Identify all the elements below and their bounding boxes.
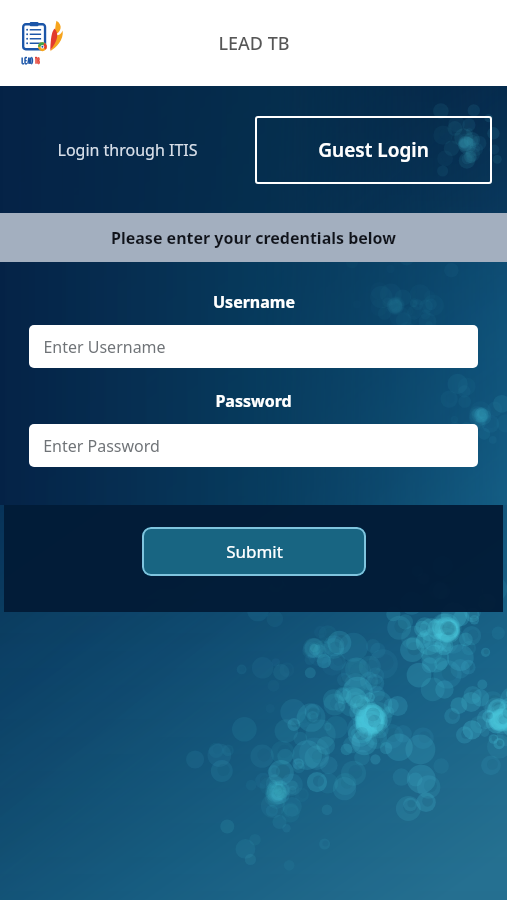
button[interactable]: Enter Password [29,424,478,467]
button[interactable]: Enter Username [29,325,478,368]
button[interactable]: Login through ITIS [0,86,255,213]
staticText: Login through ITIS [57,139,198,161]
staticText: Enter Password [43,435,160,457]
other: LEAD TB logo [18,17,70,69]
staticText: LEAD TB [218,31,290,56]
button[interactable]: Guest Login [255,116,492,184]
staticText: Password [215,390,292,412]
staticText: Submit [226,540,283,563]
button[interactable]: Submit [142,527,366,576]
staticText: Guest Login [318,137,429,163]
staticText: Enter Username [43,336,166,358]
staticText: Please enter your credentials below [111,227,396,249]
staticText: Username [213,291,295,313]
